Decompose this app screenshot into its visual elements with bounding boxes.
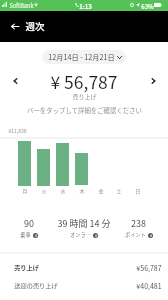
staticText: 1:13 [79, 2, 92, 11]
staticText: 木 [79, 187, 85, 194]
staticText: ¥11,830 [8, 127, 27, 134]
staticText: i [95, 233, 97, 238]
button[interactable]: Back [4, 15, 26, 37]
staticText: 売り上げ [14, 263, 39, 272]
staticText: 水 [60, 187, 66, 194]
button[interactable]: 238 [111, 214, 166, 235]
staticText: 送迎の売り上げ [14, 281, 58, 290]
staticText: バーをタップして詳細をご確認ください [27, 106, 142, 115]
button[interactable]: Previous week [5, 71, 25, 91]
button[interactable]: 39 時間 14 分 [56, 214, 111, 235]
staticText: ¥40,481 [136, 281, 162, 291]
staticText: i [150, 233, 152, 238]
staticText: i [35, 233, 37, 238]
staticText: 乗車 [20, 231, 31, 239]
button[interactable]: 売り上げ [0, 258, 168, 274]
button[interactable]: 12月14日 - 12月21日 [42, 50, 126, 64]
staticText: 90 [24, 217, 34, 230]
staticText: 週次 [25, 19, 45, 33]
button[interactable]: 送迎の売り上げ [0, 276, 168, 292]
staticText: 火 [41, 187, 47, 194]
staticText: 63% [141, 2, 154, 11]
staticText: 土 [116, 187, 122, 194]
staticText: 売り上げ [72, 92, 97, 101]
staticText: ¥ 56,787 [50, 69, 118, 94]
button[interactable]: 90 [2, 214, 56, 235]
staticText: 39 時間 14 分 [57, 217, 111, 230]
staticText: 月 [22, 187, 28, 194]
staticText: 金 [98, 187, 104, 194]
button[interactable]: Next week [143, 71, 163, 91]
staticText: ポイント [125, 231, 146, 239]
staticText: 238 [131, 217, 146, 230]
staticText: 12月14日 - 12月21日 [48, 52, 115, 62]
staticText: オンラ… [70, 231, 91, 239]
staticText: ¥56,787 [136, 263, 162, 273]
staticText: 日 [135, 187, 141, 194]
staticText: SoftBank [9, 2, 34, 10]
